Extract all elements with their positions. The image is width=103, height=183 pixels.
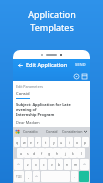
staticText: j — [65, 151, 66, 156]
staticText: l — [81, 151, 82, 156]
staticText: ?123 — [16, 175, 22, 179]
button[interactable]: q — [14, 137, 20, 147]
button[interactable]: a — [17, 148, 24, 158]
button[interactable]: l — [77, 148, 85, 158]
button[interactable]: v — [48, 159, 55, 170]
button[interactable]: i — [66, 137, 73, 147]
button[interactable]: f — [38, 148, 45, 158]
staticText: SEND — [75, 62, 86, 67]
button[interactable]: , — [25, 171, 32, 182]
button[interactable]: Backspace — [80, 159, 89, 170]
staticText: g — [48, 151, 51, 156]
button[interactable]: p — [82, 137, 89, 147]
staticText: p — [84, 140, 87, 145]
button[interactable]: Consid — [41, 129, 62, 134]
staticText: c — [43, 162, 45, 167]
staticText: , — [28, 174, 29, 179]
staticText: Templates — [30, 21, 74, 33]
staticText: Considio — [23, 129, 38, 134]
button[interactable]: o — [74, 137, 81, 147]
button[interactable]: h — [53, 148, 61, 158]
button[interactable]: k — [69, 148, 77, 158]
button[interactable]: m — [72, 159, 79, 170]
button[interactable]: r — [35, 137, 41, 147]
button[interactable]: Expand — [83, 129, 88, 134]
button[interactable]: n — [64, 159, 71, 170]
staticText: Consid — [16, 91, 30, 97]
button[interactable]: . — [71, 171, 78, 182]
button[interactable]: s — [24, 148, 31, 158]
button[interactable]: Considio — [20, 129, 41, 134]
staticText: Considerion — [62, 129, 83, 134]
staticText: Dear Madam, — [16, 120, 41, 124]
button[interactable]: ?123 — [14, 171, 24, 182]
staticText: k — [72, 151, 74, 156]
staticText: Edit Application — [26, 61, 68, 68]
button[interactable]: u — [58, 137, 65, 147]
staticText: u — [60, 140, 63, 145]
staticText: r — [37, 140, 39, 145]
staticText: n — [66, 162, 69, 167]
staticText: Application — [28, 8, 76, 20]
staticText: o — [76, 140, 79, 145]
button[interactable]: Back — [16, 61, 24, 69]
staticText: s — [27, 151, 29, 156]
button[interactable]: x — [32, 159, 39, 170]
staticText: b — [58, 162, 61, 167]
button[interactable]: t — [42, 137, 49, 147]
button[interactable]: w — [21, 137, 27, 147]
button[interactable]: Shift — [14, 159, 23, 170]
staticText: f — [41, 151, 43, 156]
staticText: i — [69, 140, 70, 145]
staticText: x — [35, 162, 37, 167]
staticText: v — [51, 162, 53, 167]
staticText: Subject: Application for Late evening of… — [16, 102, 87, 117]
staticText: Edit Parameters — [16, 84, 43, 89]
button[interactable]: Emoji — [33, 171, 40, 182]
staticText: Consid — [46, 129, 58, 134]
staticText: a — [20, 151, 22, 156]
button[interactable]: y — [50, 137, 57, 147]
button[interactable]: SEND — [74, 62, 87, 67]
button[interactable]: More — [81, 73, 87, 79]
button[interactable]: c — [40, 159, 47, 170]
staticText: . — [74, 174, 75, 179]
button[interactable]: d — [31, 148, 38, 158]
button[interactable]: Enter — [79, 171, 89, 182]
staticText: y — [53, 140, 55, 145]
staticText: m — [74, 162, 78, 167]
staticText: z — [27, 162, 29, 167]
button[interactable]: Attach — [73, 73, 79, 79]
staticText: e — [30, 140, 32, 145]
button[interactable]: b — [56, 159, 63, 170]
staticText: h — [56, 151, 59, 156]
button[interactable]: g — [45, 148, 53, 158]
staticText: t — [45, 140, 47, 145]
button[interactable]: j — [61, 148, 69, 158]
button[interactable]: z — [24, 159, 31, 170]
staticText: d — [33, 151, 36, 156]
staticText: w — [23, 140, 26, 145]
button[interactable]: e — [28, 137, 34, 147]
button[interactable]: Considerion — [62, 129, 83, 134]
staticText: q — [16, 140, 19, 145]
